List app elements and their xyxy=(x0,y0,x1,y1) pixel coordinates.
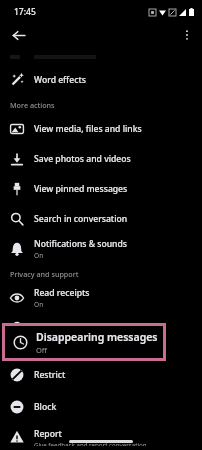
button[interactable]: Restrict xyxy=(0,366,202,384)
staticText: On xyxy=(34,251,44,260)
staticText: Off xyxy=(36,345,48,355)
staticText: 17:45 xyxy=(14,6,36,18)
staticText: View pinned messages xyxy=(34,183,128,195)
button[interactable]: Read receipts xyxy=(0,283,202,313)
button[interactable]: Word effects xyxy=(0,65,202,95)
staticText: More actions xyxy=(10,100,55,110)
staticText: Give feedback and report conversation xyxy=(34,441,147,446)
button[interactable]: More options xyxy=(175,23,199,47)
button[interactable]: Notifications & sounds xyxy=(0,234,202,264)
staticText: Restrict xyxy=(34,369,66,381)
button[interactable]: Block xyxy=(0,398,202,416)
staticText: Block xyxy=(34,401,57,413)
staticText: View media, files and links xyxy=(34,123,142,135)
button[interactable]: Back xyxy=(6,23,30,47)
staticText: Report xyxy=(34,428,62,440)
button[interactable]: Verify end-to-end encryption xyxy=(0,313,202,343)
staticText: Word effects xyxy=(34,74,86,86)
staticText: Verify end-to-end encryption xyxy=(34,322,152,334)
staticText: Search in conversation xyxy=(34,213,128,225)
staticText: Notifications & sounds xyxy=(34,238,127,250)
button[interactable]: Save photos and videos xyxy=(0,144,202,174)
button[interactable]: View media, files and links xyxy=(0,114,202,144)
staticText: Privacy and support xyxy=(10,269,79,279)
button[interactable]: View pinned messages xyxy=(0,174,202,204)
button[interactable]: Report xyxy=(0,428,202,446)
staticText: Disappearing messages xyxy=(36,330,158,344)
staticText: On xyxy=(34,300,44,309)
button[interactable]: Disappearing messages xyxy=(5,326,163,358)
button[interactable]: Search in conversation xyxy=(0,204,202,234)
staticText: Read receipts xyxy=(34,287,90,299)
staticText: Save photos and videos xyxy=(34,153,131,165)
button[interactable] xyxy=(0,51,202,65)
